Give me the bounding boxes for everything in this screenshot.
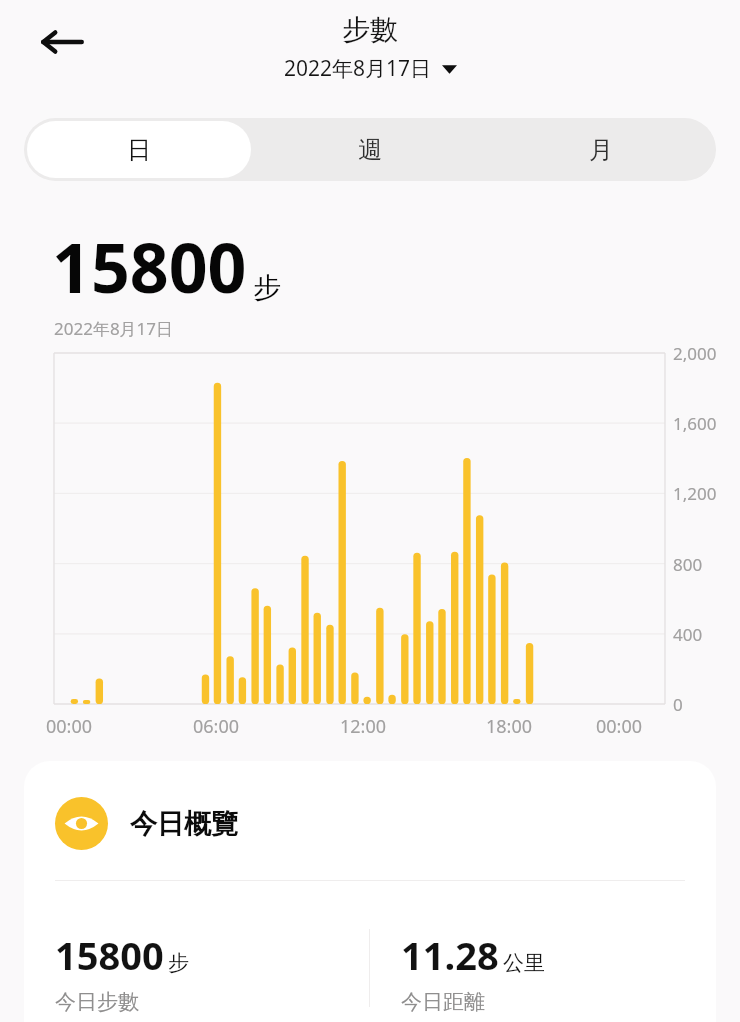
staticText: 步 [253,270,281,305]
button[interactable]: Overview [24,761,716,1022]
staticText: 2,000 [673,342,717,365]
staticText: 18:00 [486,714,533,739]
other: Overview [55,797,108,850]
staticText: 月 [589,135,613,165]
button[interactable]: 15800 [55,929,369,1015]
button[interactable]: 週 [257,121,482,178]
staticText: 0 [673,693,683,716]
staticText: 今日概覽 [130,807,238,841]
button[interactable]: 月 [488,121,713,178]
staticText: 15800 [52,220,247,313]
button[interactable]: 日 [27,121,251,178]
staticText: 1,200 [673,482,717,505]
button[interactable]: 11.28 [401,929,716,1015]
button[interactable]: 2022年8月17日 [284,54,457,83]
staticText: 06:00 [193,714,240,739]
staticText: 2022年8月17日 [284,54,432,83]
button[interactable]: Back [36,16,88,68]
staticText: 1,600 [673,412,717,435]
staticText: 11.28 [401,929,499,981]
staticText: 公里 [503,950,545,976]
staticText: 今日步數 [55,989,139,1015]
staticText: 400 [673,623,703,646]
staticText: 00:00 [46,714,93,739]
staticText: 2022年8月17日 [54,317,174,340]
staticText: 步 [168,950,189,976]
staticText: 步數 [342,12,398,47]
staticText: 00:00 [596,714,643,739]
staticText: 800 [673,553,703,576]
staticText: 15800 [55,929,164,981]
staticText: 12:00 [340,714,387,739]
staticText: 今日距離 [401,989,485,1015]
staticText: 日 [127,135,151,165]
staticText: 週 [358,135,382,165]
